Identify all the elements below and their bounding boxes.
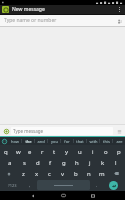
button[interactable]: Add recipient from contacts: [115, 17, 123, 25]
button[interactable]: l: [109, 157, 122, 168]
staticText: i: [92, 148, 94, 156]
button[interactable]: Send: [115, 127, 123, 135]
button[interactable]: Up: [2, 6, 9, 13]
staticText: d: [36, 159, 40, 167]
button[interactable]: t: [48, 146, 60, 157]
button[interactable]: w: [12, 146, 24, 157]
staticText: h: [75, 159, 79, 167]
staticText: m: [99, 170, 105, 178]
button[interactable]: k: [96, 157, 109, 168]
staticText: g: [62, 159, 66, 167]
staticText: how: [11, 139, 19, 144]
button[interactable]: are: [113, 137, 125, 145]
staticText: with: [89, 139, 98, 144]
staticText: p: [117, 148, 121, 156]
staticText: New message: [12, 6, 45, 13]
button[interactable]: q: [0, 146, 12, 157]
button[interactable]: Recent apps: [85, 191, 101, 200]
button[interactable]: that: [74, 137, 86, 145]
staticText: v: [61, 170, 65, 178]
button[interactable]: e: [24, 146, 36, 157]
staticText: the: [25, 139, 32, 144]
button[interactable]: j: [83, 157, 96, 168]
staticText: x: [35, 170, 39, 178]
button[interactable]: u: [73, 146, 86, 157]
staticText: a: [8, 159, 12, 167]
staticText: k: [101, 159, 105, 167]
staticText: w: [16, 148, 21, 156]
button[interactable]: Type name or number: [0, 15, 125, 26]
button[interactable]: c: [43, 168, 56, 179]
staticText: l: [115, 159, 117, 167]
button[interactable]: you: [48, 137, 60, 145]
button[interactable]: s: [17, 157, 31, 168]
staticText: ,: [29, 182, 31, 189]
button[interactable]: x: [30, 168, 43, 179]
button[interactable]: h: [70, 157, 83, 168]
staticText: Type name or number: [4, 17, 57, 24]
button[interactable]: Space: [37, 180, 90, 190]
button[interactable]: r: [36, 146, 48, 157]
staticText: for: [64, 139, 70, 144]
staticText: z: [22, 170, 25, 178]
button[interactable]: f: [44, 157, 57, 168]
button[interactable]: Enter: [103, 180, 124, 190]
button[interactable]: g: [57, 157, 70, 168]
button[interactable]: a: [3, 157, 17, 168]
button[interactable]: Attach: [2, 127, 10, 135]
staticText: and: [37, 139, 45, 144]
staticText: t: [53, 148, 56, 156]
button[interactable]: y: [60, 146, 73, 157]
button[interactable]: b: [69, 168, 82, 179]
button[interactable]: o: [99, 146, 112, 157]
button[interactable]: v: [56, 168, 69, 179]
button[interactable]: z: [17, 168, 30, 179]
staticText: you: [51, 139, 58, 144]
staticText: this: [103, 139, 110, 144]
button[interactable]: Symbols: [1, 180, 23, 190]
staticText: .: [96, 182, 98, 189]
button[interactable]: i: [86, 146, 99, 157]
staticText: are: [116, 139, 123, 144]
button[interactable]: n: [82, 168, 95, 179]
staticText: q: [4, 148, 8, 156]
button[interactable]: for: [61, 137, 73, 145]
staticText: ?123: [8, 183, 17, 188]
button[interactable]: with: [87, 137, 99, 145]
staticText: Type message: [13, 128, 44, 134]
button[interactable]: Emoji: [0, 137, 8, 145]
staticText: o: [104, 148, 108, 156]
button[interactable]: m: [95, 168, 108, 179]
staticText: that: [76, 139, 84, 144]
button[interactable]: Comma: [23, 180, 37, 190]
staticText: f: [49, 159, 52, 167]
button[interactable]: More options: [116, 5, 123, 14]
staticText: e: [28, 148, 32, 156]
staticText: s: [23, 159, 26, 167]
button[interactable]: Period: [90, 180, 103, 190]
button[interactable]: and: [35, 137, 47, 145]
button[interactable]: Home: [55, 191, 71, 200]
button[interactable]: d: [31, 157, 44, 168]
staticText: c: [48, 170, 51, 178]
button[interactable]: Shift: [0, 168, 17, 179]
button[interactable]: Delete: [108, 168, 125, 179]
staticText: u: [78, 148, 82, 156]
button[interactable]: the: [22, 137, 34, 145]
staticText: j: [89, 159, 91, 167]
staticText: r: [41, 148, 44, 156]
button[interactable]: Back: [25, 191, 41, 200]
button[interactable]: Type message: [11, 127, 113, 135]
button[interactable]: how: [8, 137, 21, 145]
button[interactable]: this: [100, 137, 112, 145]
staticText: y: [65, 148, 69, 156]
staticText: n: [87, 170, 91, 178]
staticText: b: [74, 170, 78, 178]
button[interactable]: p: [112, 146, 125, 157]
